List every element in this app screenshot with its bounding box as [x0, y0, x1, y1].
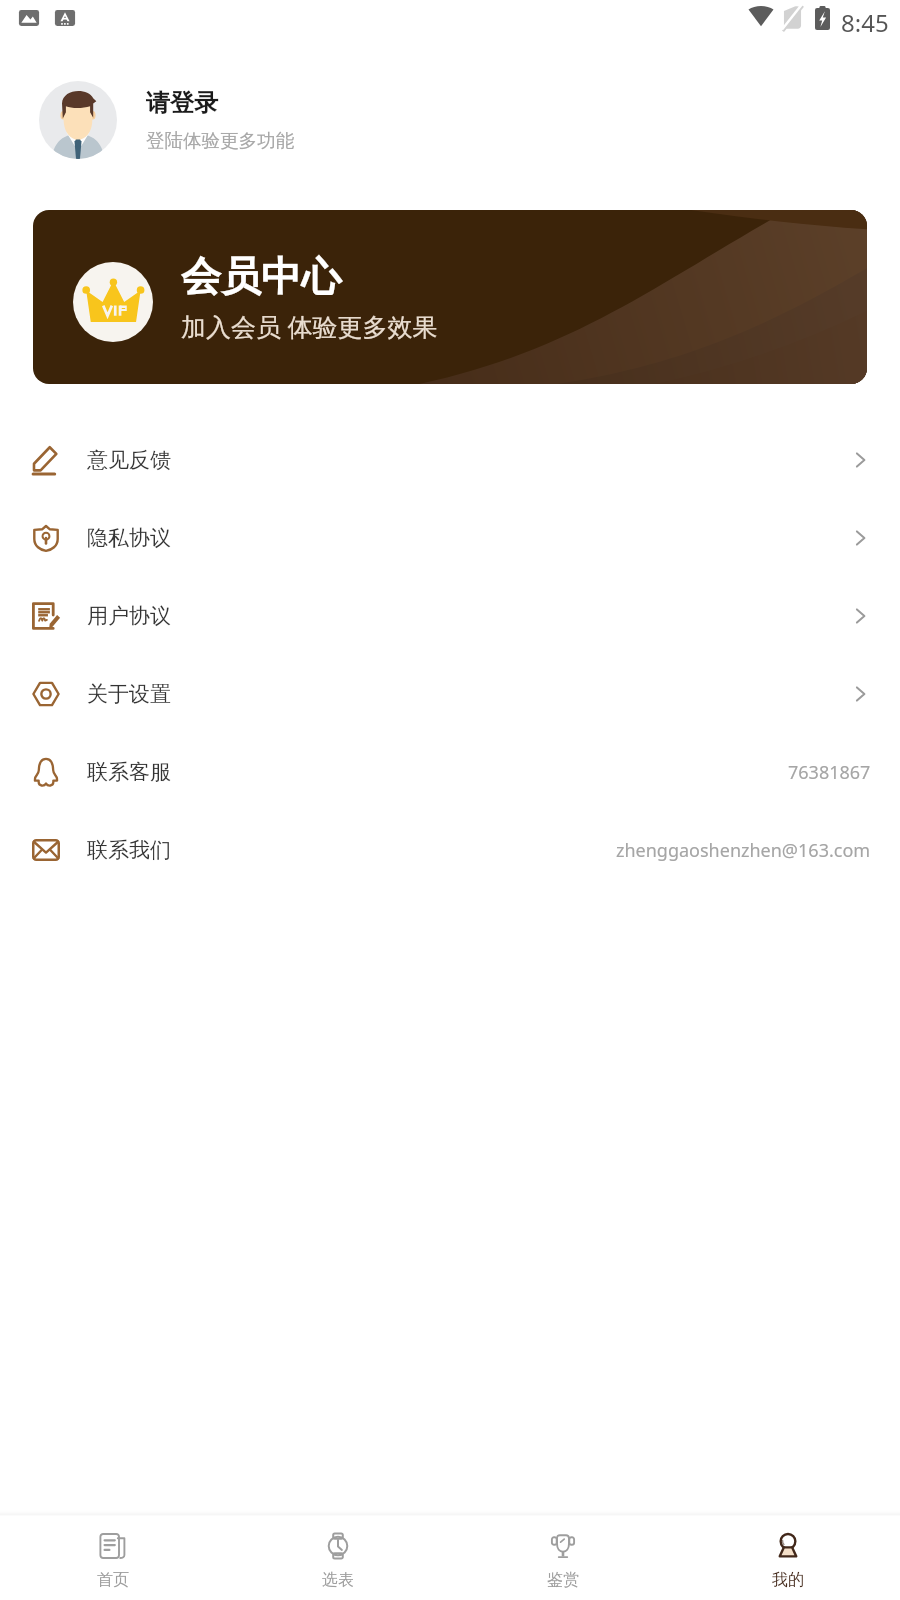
button[interactable]: 联系我们	[0, 811, 900, 889]
staticText: 隐私协议	[87, 525, 171, 551]
staticText: 会员中心	[181, 251, 341, 301]
staticText: 加入会员 体验更多效果	[181, 309, 438, 343]
button[interactable]: 鉴赏	[450, 1516, 675, 1600]
staticText: 我的	[772, 1570, 804, 1590]
staticText: 联系我们	[87, 837, 171, 863]
staticText: zhenggaoshenzhen@163.com	[616, 838, 871, 863]
button[interactable]: 意见反馈	[0, 421, 900, 499]
button[interactable]: 关于设置	[0, 655, 900, 733]
staticText: 联系客服	[87, 759, 171, 785]
staticText: 登陆体验更多功能	[146, 129, 294, 152]
staticText: 8:45	[841, 6, 889, 39]
staticText: 关于设置	[87, 681, 171, 707]
staticText: 76381867	[788, 760, 871, 785]
button[interactable]: 首页	[0, 1516, 225, 1600]
staticText: 用户协议	[87, 603, 171, 629]
button[interactable]: 我的	[675, 1516, 900, 1600]
staticText: 鉴赏	[547, 1570, 579, 1590]
staticText: 选表	[322, 1570, 354, 1590]
staticText: 请登录	[146, 88, 218, 118]
button[interactable]: 选表	[225, 1516, 450, 1600]
button[interactable]: 会员中心 加入会员 体验更多效果	[33, 210, 867, 384]
staticText: 意见反馈	[87, 447, 171, 473]
staticText: 首页	[97, 1570, 129, 1590]
button[interactable]: 隐私协议	[0, 499, 900, 577]
button[interactable]: 用户头像	[0, 60, 900, 180]
button[interactable]: 联系客服	[0, 733, 900, 811]
other: 用户头像	[39, 81, 117, 159]
button[interactable]: 用户协议	[0, 577, 900, 655]
